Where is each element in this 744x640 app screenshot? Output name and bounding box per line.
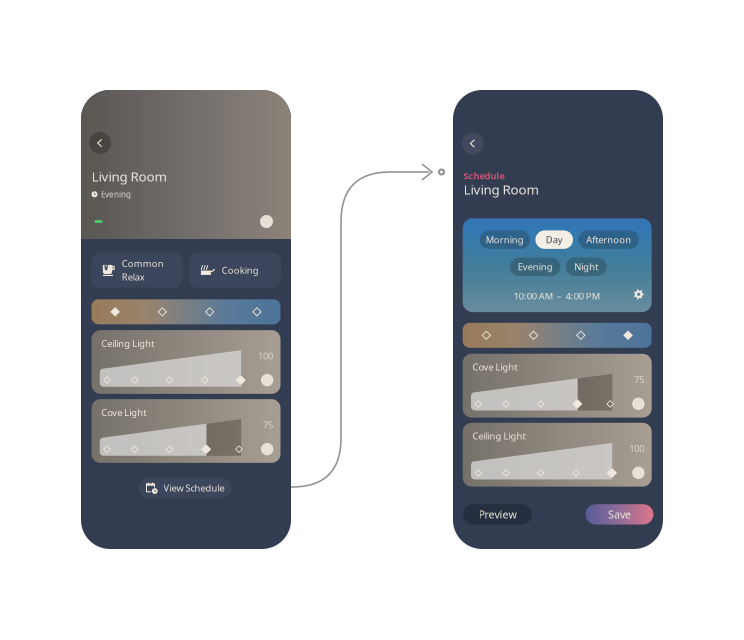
button[interactable]: Schedule settings: [633, 289, 644, 300]
button[interactable]: Evening: [510, 257, 560, 276]
staticText: Night: [574, 261, 598, 273]
button[interactable]: Night: [566, 257, 607, 276]
staticText: 75: [263, 419, 273, 431]
button[interactable]: Cove Light: [463, 354, 652, 418]
staticText: View Schedule: [163, 482, 224, 494]
button[interactable]: Common: [91, 253, 183, 288]
button[interactable]: Cooking: [189, 253, 281, 288]
staticText: 100: [258, 350, 273, 362]
button[interactable]: Afternoon: [578, 230, 639, 249]
button[interactable]: View Schedule: [139, 478, 231, 498]
staticText: Day: [546, 233, 563, 246]
button[interactable]: Cove Light: [91, 399, 280, 463]
staticText: Ceiling Light: [101, 337, 154, 349]
staticText: 75: [634, 373, 644, 386]
button[interactable]: Back: [89, 132, 111, 154]
staticText: 100: [629, 442, 644, 455]
button[interactable]: Ceiling Light: [91, 330, 280, 394]
staticText: Living Room: [91, 167, 166, 185]
staticText: Cove Light: [472, 361, 517, 373]
staticText: Afternoon: [586, 233, 631, 246]
staticText: Save: [608, 507, 631, 521]
staticText: Common: [122, 257, 164, 270]
button[interactable]: Save: [586, 504, 653, 524]
staticText: Schedule: [463, 169, 504, 182]
button[interactable]: Scene colour: [91, 299, 280, 324]
staticText: Morning: [486, 233, 524, 246]
staticText: 10:00 AM – 4:00 PM: [514, 290, 600, 302]
staticText: Relax: [122, 271, 145, 283]
button[interactable]: Ceiling Light: [463, 423, 652, 487]
button[interactable]: Day: [535, 230, 573, 249]
button[interactable]: Preview: [463, 504, 532, 524]
staticText: Cooking: [222, 264, 259, 276]
button[interactable]: Back: [462, 132, 484, 154]
staticText: Evening: [101, 189, 131, 200]
staticText: Preview: [479, 507, 517, 521]
staticText: Cove Light: [101, 406, 146, 418]
button[interactable]: Morning: [480, 230, 530, 249]
button[interactable]: Scene colour: [463, 323, 652, 348]
staticText: Ceiling Light: [472, 430, 525, 442]
staticText: Evening: [518, 261, 553, 273]
staticText: Living Room: [463, 180, 538, 198]
